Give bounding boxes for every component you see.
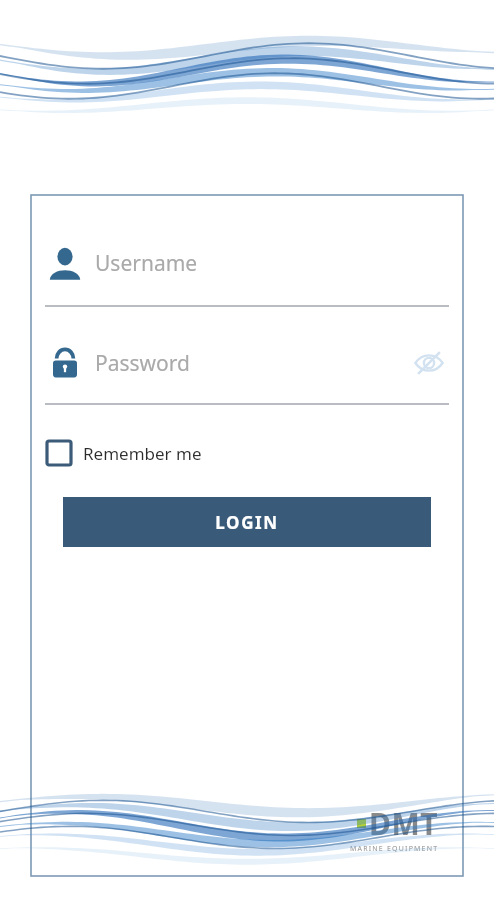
staticText: DMT (369, 803, 439, 844)
button[interactable]: Remember me (47, 433, 202, 473)
button[interactable]: Password (45, 343, 449, 403)
button[interactable]: LOGIN (63, 497, 431, 547)
staticText: LOGIN (215, 511, 279, 534)
staticText: Password (95, 349, 190, 378)
staticText: Username (95, 249, 198, 278)
button[interactable]: Username (45, 243, 449, 305)
staticText: Remember me (83, 442, 202, 465)
staticText: MARINE EQUIPMENT (350, 844, 439, 854)
button[interactable]: Show password (409, 343, 449, 383)
